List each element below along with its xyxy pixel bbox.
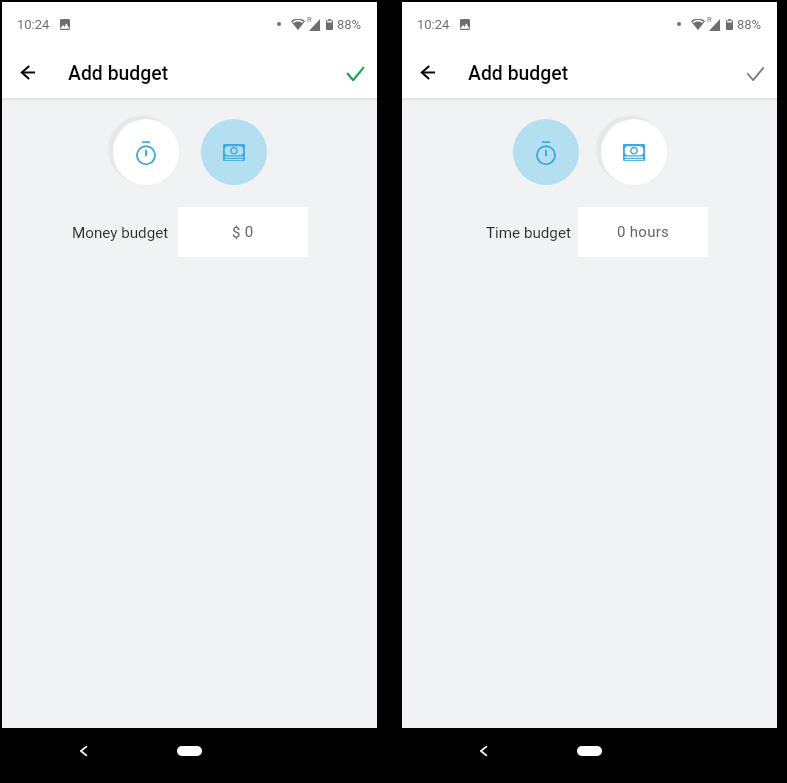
- button[interactable]: $ 0: [178, 207, 308, 257]
- staticText: Add budget: [68, 62, 169, 85]
- staticText: R: [707, 15, 712, 24]
- staticText: Add budget: [468, 62, 569, 85]
- button[interactable]: Time budget: [513, 119, 579, 185]
- button[interactable]: Save: [339, 58, 371, 90]
- staticText: R: [307, 15, 312, 24]
- button[interactable]: Save: [739, 58, 771, 90]
- staticText: $ 0: [232, 223, 254, 241]
- staticText: Money budget: [72, 224, 169, 242]
- button[interactable]: Money budget: [601, 119, 667, 185]
- button[interactable]: Back: [14, 58, 42, 86]
- button[interactable]: Time budget: [113, 119, 179, 185]
- staticText: 88%: [337, 17, 362, 32]
- button[interactable]: Back: [467, 735, 499, 767]
- staticText: 0 hours: [617, 223, 670, 241]
- button[interactable]: Back: [67, 735, 99, 767]
- button[interactable]: 0 hours: [578, 207, 708, 257]
- button[interactable]: Home: [577, 746, 602, 756]
- staticText: Time budget: [486, 224, 571, 242]
- staticText: 88%: [737, 17, 762, 32]
- staticText: 10:24: [417, 17, 450, 32]
- button[interactable]: Money budget: [201, 119, 267, 185]
- button[interactable]: Back: [414, 58, 442, 86]
- button[interactable]: Home: [177, 746, 202, 756]
- staticText: 10:24: [17, 17, 50, 32]
